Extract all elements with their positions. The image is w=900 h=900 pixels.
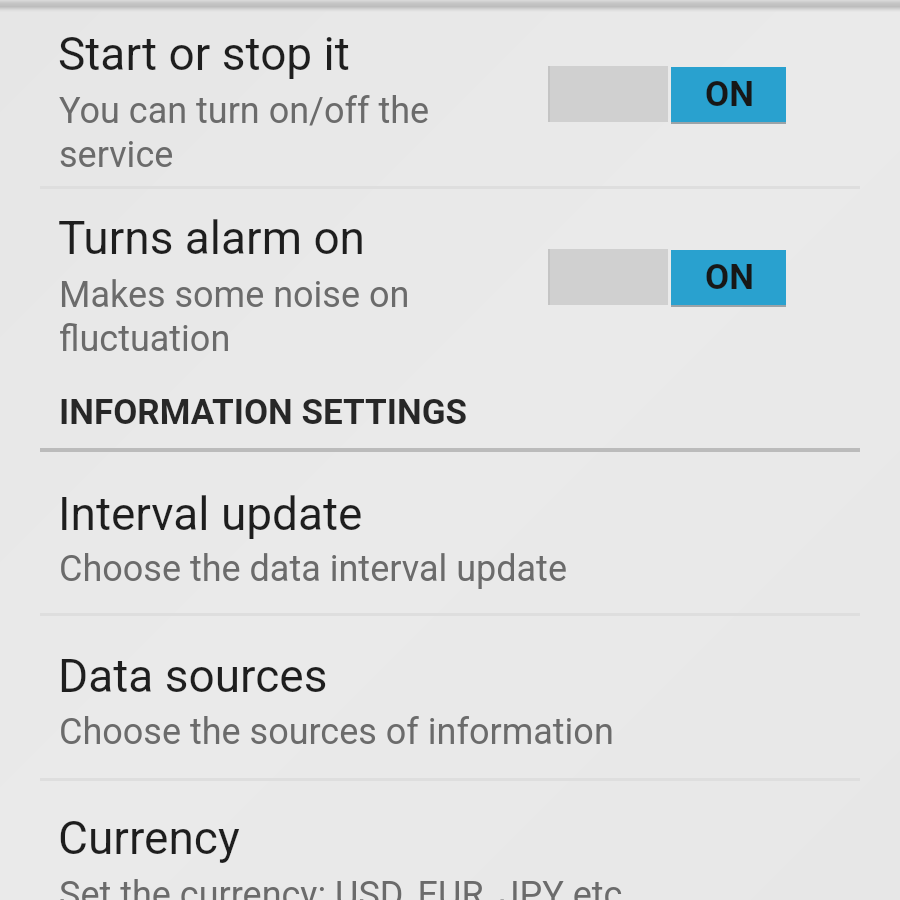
staticText: Turns alarm on [58, 211, 366, 265]
staticText: fluctuation [59, 318, 231, 360]
staticText: service [59, 134, 174, 176]
button[interactable]: Toggle setting on or off [548, 249, 786, 306]
staticText: You can turn on/off the [59, 90, 430, 132]
staticText: Data sources [58, 649, 328, 703]
button[interactable]: Start or stop it [0, 14, 900, 182]
staticText: Start or stop it [58, 27, 350, 81]
button[interactable]: Toggle setting on or off [548, 66, 786, 123]
button[interactable]: Interval update [0, 464, 900, 614]
staticText: INFORMATION SETTINGS [59, 392, 468, 433]
staticText: Choose the sources of information [59, 711, 614, 753]
staticText: Currency [58, 811, 240, 865]
staticText: ON [705, 257, 754, 298]
staticText: Set the currency: USD, EUR, JPY etc. [59, 874, 632, 900]
button[interactable]: Currency [0, 789, 900, 900]
staticText: ON [705, 74, 754, 115]
button[interactable]: Data sources [0, 626, 900, 779]
staticText: Makes some noise on [59, 274, 410, 316]
button[interactable]: Turns alarm on [0, 196, 900, 364]
staticText: Choose the data interval update [59, 548, 567, 590]
staticText: Interval update [58, 487, 363, 541]
